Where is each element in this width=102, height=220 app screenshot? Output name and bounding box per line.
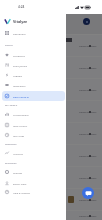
button[interactable]: Latest log entry — [0, 211, 102, 220]
staticText: Latest log entry — [79, 44, 97, 47]
staticText: Latest log entry — [79, 110, 97, 113]
button[interactable]: Latest log entry — [0, 123, 102, 144]
staticText: GI Dashboard — [13, 113, 29, 116]
staticText: Settings — [13, 171, 23, 174]
button[interactable]: Latest log entry — [0, 167, 102, 188]
staticText: Latest log entry — [79, 198, 97, 201]
button[interactable]: Help & Support — [2, 187, 65, 197]
button[interactable]: Analytics — [2, 148, 65, 158]
staticText: Analytics — [13, 152, 23, 155]
button[interactable]: Latest log entry — [0, 57, 102, 78]
button[interactable]: Latest log entry — [0, 189, 102, 210]
button[interactable]: MD Notes — [2, 130, 65, 140]
button[interactable]: Triggers — [2, 70, 65, 80]
staticText: Latest log entry — [79, 176, 97, 179]
staticText: Latest log entry — [79, 88, 97, 91]
button[interactable]: Daily Check-in — [2, 91, 65, 101]
staticText: Latest log entry — [79, 132, 97, 135]
staticText: Latest log entry — [79, 154, 97, 157]
staticText: 4:24 — [18, 5, 25, 9]
staticText: SETTINGS — [5, 162, 17, 165]
button[interactable]: Symptoms — [2, 50, 65, 60]
staticText: TRACK — [5, 44, 13, 47]
button[interactable]: Food Journal — [2, 60, 65, 70]
staticText: Vitalyze — [13, 19, 28, 24]
button[interactable]: Medication — [2, 80, 65, 90]
staticText: INSIGHTS — [5, 143, 17, 146]
button[interactable]: Settings — [2, 167, 65, 177]
staticText: Food Journal — [13, 64, 28, 67]
staticText: Meal History — [13, 124, 28, 127]
button[interactable]: Latest log entry — [0, 35, 102, 56]
button[interactable]: New message — [82, 187, 94, 199]
button[interactable]: GI Dashboard — [2, 109, 65, 119]
button[interactable]: Export Data — [2, 178, 65, 188]
staticText: Daily Check-in — [13, 95, 30, 98]
staticText: Help & Support — [13, 191, 31, 194]
staticText: Dashboard — [13, 32, 26, 35]
button[interactable]: Latest log entry — [0, 79, 102, 100]
staticText: Latest log entry — [79, 214, 97, 217]
staticText: Triggers — [13, 74, 23, 77]
staticText: Symptoms — [13, 54, 25, 57]
button[interactable]: Dashboard — [2, 28, 65, 38]
staticText: Latest log entry — [79, 66, 97, 69]
staticText: MD Notes — [13, 134, 25, 137]
staticText: MY TOOLS — [5, 104, 18, 107]
staticText: Medication — [13, 84, 26, 87]
button[interactable]: Latest log entry — [0, 101, 102, 122]
button[interactable]: Latest log entry — [0, 145, 102, 166]
staticText: Export Data — [13, 182, 27, 185]
button[interactable]: Meal History — [2, 120, 65, 130]
button[interactable]: Profile — [83, 18, 90, 25]
